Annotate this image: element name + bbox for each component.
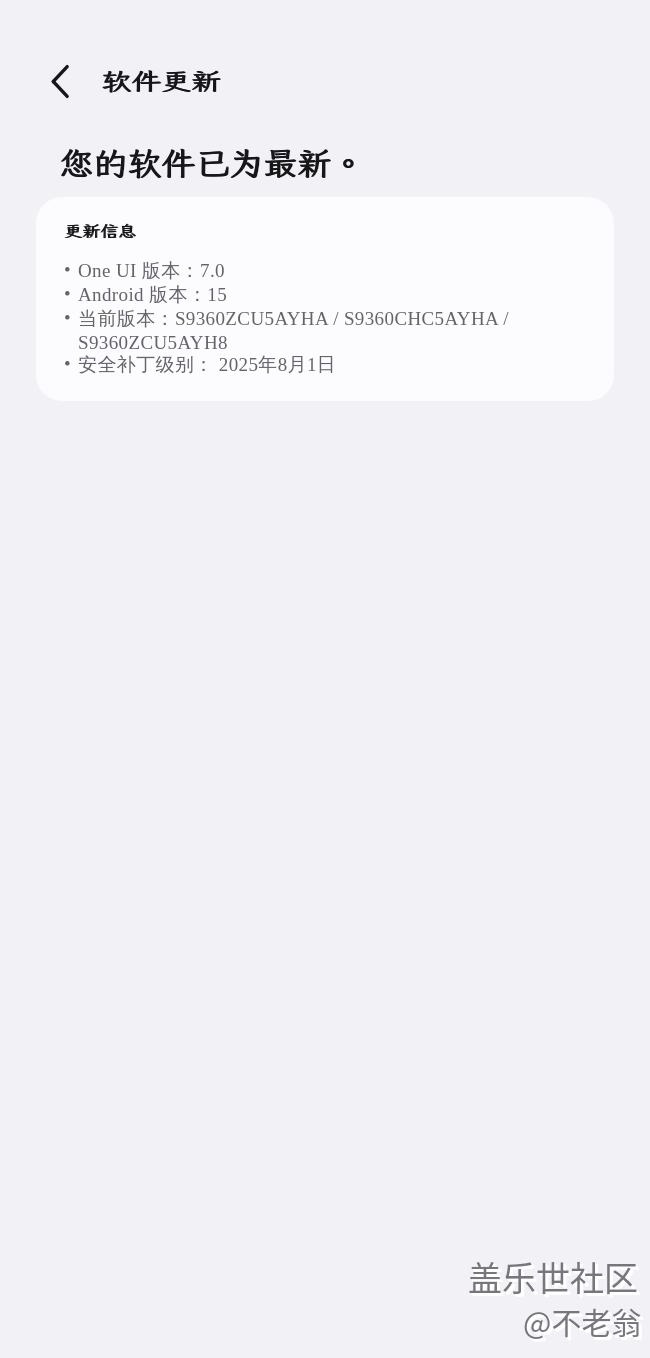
staticText: 盖乐世社区 [470,1254,640,1303]
staticText: 您的软件已为最新。 [60,142,366,185]
staticText: 软件更新 [102,65,222,97]
staticText: 安全补丁级别： 2025年8月1日 [78,353,337,377]
button[interactable]: Back [38,58,82,104]
staticText: 盖乐世社区 [470,1254,640,1303]
staticText: 盖乐世社区 [468,1252,638,1301]
staticText: 更新信息 [64,220,136,241]
staticText: 您的软件已为最新。 [59,142,365,185]
staticText: • [64,353,78,374]
staticText: 软件更新 [101,65,221,97]
staticText: @不老翁 [523,1299,642,1342]
staticText: • [64,259,78,280]
staticText: @不老翁 [526,1302,645,1345]
staticText: @不老翁 [525,1301,644,1344]
staticText: 您的软件已为最新。 [59,142,365,185]
button[interactable]: 更新信息 [36,197,614,401]
staticText: Android 版本：15 [78,283,228,307]
staticText: 盖乐世社区 [471,1255,641,1304]
staticText: • [64,283,78,304]
staticText: 更新信息 [64,220,136,241]
staticText: 更新信息 [65,220,137,241]
staticText: • [64,307,78,328]
staticText: One UI 版本：7.0 [78,259,225,283]
staticText: 软件更新 [101,65,221,97]
staticText: 当前版本：S9360ZCU5AYHA / S9360CHC5AYHA / S93… [78,307,509,353]
staticText: @不老翁 [525,1301,644,1344]
